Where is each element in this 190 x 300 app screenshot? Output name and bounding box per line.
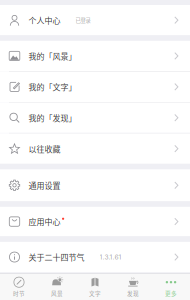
button[interactable]: 以往收藏 <box>0 133 190 164</box>
staticText: 发现 <box>127 289 139 297</box>
staticText: 更多 <box>165 289 177 297</box>
button[interactable]: 个人中心 <box>0 5 190 35</box>
staticText: 我的「风景」 <box>28 50 76 62</box>
button[interactable]: 我的「文字」 <box>0 72 190 102</box>
staticText: 关于二十四节气 <box>28 251 84 263</box>
staticText: 应用中心 <box>28 216 60 227</box>
button[interactable]: 我的「风景」 <box>0 41 190 71</box>
button[interactable]: 我的「发现」 <box>0 103 190 133</box>
button[interactable]: 关于二十四节气 <box>0 242 190 272</box>
button[interactable]: 更多 <box>152 274 190 300</box>
staticText: 1.3.1.61 <box>99 253 121 261</box>
staticText: 通用设置 <box>28 179 60 191</box>
button[interactable]: 时节 <box>0 274 38 300</box>
staticText: 以往收藏 <box>28 143 60 154</box>
button[interactable]: 发现 <box>114 274 152 300</box>
staticText: 我的「发现」 <box>28 112 76 124</box>
staticText: 文字 <box>89 289 101 297</box>
button[interactable]: 应用中心 <box>0 207 190 236</box>
button[interactable]: 文字 <box>76 274 114 300</box>
button[interactable]: 通用设置 <box>0 169 190 201</box>
staticText: 已登录 <box>75 16 90 24</box>
button[interactable]: 风景 <box>38 274 76 300</box>
staticText: 个人中心 <box>28 14 60 26</box>
staticText: 风景 <box>51 289 63 297</box>
staticText: 时节 <box>13 289 25 297</box>
staticText: 我的「文字」 <box>28 81 76 93</box>
